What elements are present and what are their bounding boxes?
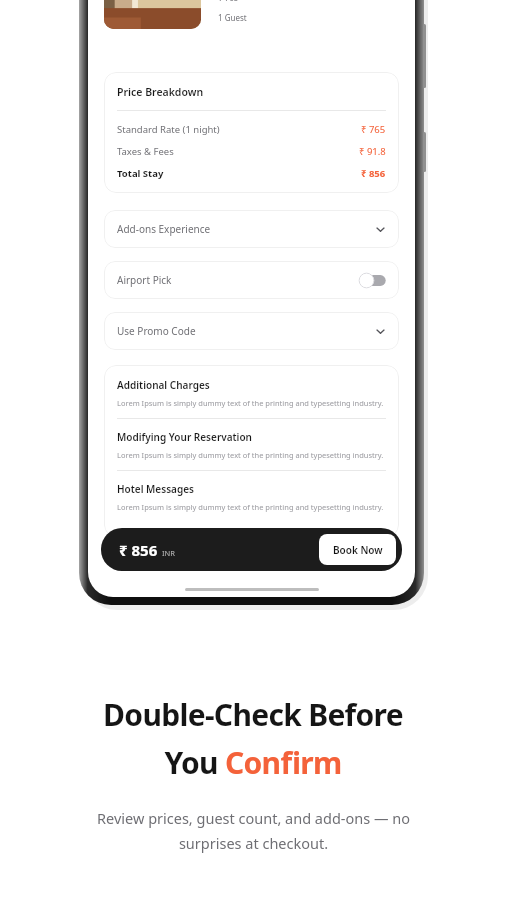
button[interactable]: Add-ons Experience: [104, 210, 399, 248]
staticText: Taxes & Fees: [117, 145, 174, 158]
staticText: Hotel Messages: [117, 482, 194, 496]
button[interactable]: Use Promo Code: [104, 312, 399, 350]
staticText: ₹ 765: [361, 123, 386, 136]
staticText: Add-ons Experience: [117, 222, 211, 236]
button[interactable]: Airport pick toggle, off: [359, 273, 386, 288]
staticText: Use Promo Code: [117, 324, 196, 338]
staticText: ₹ 856: [361, 167, 386, 180]
staticText: Price Breakdown: [117, 85, 204, 99]
staticText: ₹ 765: [218, 0, 239, 3]
staticText: 1 Guest: [218, 12, 247, 23]
staticText: INR: [162, 548, 175, 558]
staticText: ₹ 856: [119, 540, 158, 560]
staticText: Review prices, guest count, and add-ons …: [97, 808, 410, 854]
staticText: Airport Pick: [117, 273, 172, 287]
staticText: Lorem Ipsum is simply dummy text of the …: [117, 502, 384, 512]
staticText: Standard Rate (1 night): [117, 123, 220, 136]
staticText: Double-Check Before You Confirm: [103, 694, 403, 782]
button[interactable]: Book Now: [319, 534, 396, 565]
staticText: Modifying Your Reservation: [117, 430, 252, 444]
staticText: Total Stay: [117, 167, 164, 180]
staticText: Lorem Ipsum is simply dummy text of the …: [117, 398, 384, 408]
staticText: Book Now: [333, 543, 383, 557]
staticText: Additional Charges: [117, 378, 210, 392]
button[interactable]: Airport Pick: [104, 261, 399, 299]
staticText: ₹ 91.8: [359, 145, 386, 158]
staticText: Lorem Ipsum is simply dummy text of the …: [117, 450, 384, 460]
